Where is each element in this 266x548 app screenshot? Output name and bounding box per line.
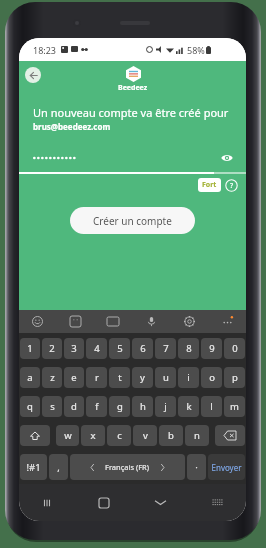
button[interactable]: !#1 <box>20 454 47 480</box>
staticText: f <box>95 400 99 413</box>
button[interactable]: Settings <box>170 310 208 333</box>
button[interactable]: x <box>81 425 105 446</box>
staticText: brus@beedeez.com <box>33 121 111 132</box>
button[interactable]: m <box>224 396 245 417</box>
button[interactable]: Keyboard <box>189 484 246 521</box>
staticText: Fort <box>202 180 217 190</box>
staticText: Créer un compte <box>93 214 172 228</box>
button[interactable]: · <box>187 454 206 480</box>
button[interactable]: Recents <box>19 484 75 521</box>
button[interactable]: Shift <box>20 425 50 446</box>
button[interactable]: 2 <box>42 338 62 359</box>
button[interactable]: Fort <box>202 180 217 190</box>
button[interactable]: e <box>64 367 84 388</box>
button[interactable]: More <box>208 310 246 333</box>
staticText: !#1 <box>26 461 41 474</box>
button[interactable]: n <box>185 425 209 446</box>
staticText: e <box>71 371 77 384</box>
staticText: g <box>117 400 123 413</box>
button[interactable]: Français (FR) <box>70 454 185 480</box>
staticText: 2 <box>49 342 55 355</box>
button[interactable]: a <box>20 367 40 388</box>
staticText: Envoyer <box>211 462 242 473</box>
staticText: ? <box>230 181 234 191</box>
button[interactable]: Créer un compte <box>70 207 195 234</box>
button[interactable]: u <box>155 367 176 388</box>
staticText: b <box>168 429 174 442</box>
staticText: t <box>118 371 122 384</box>
button[interactable]: Envoyer <box>208 454 245 480</box>
staticText: m <box>230 400 239 413</box>
staticText: 3 <box>71 342 77 355</box>
staticText: l <box>210 400 213 413</box>
button[interactable]: Emoji <box>19 310 56 333</box>
staticText: p <box>232 371 238 384</box>
button[interactable]: l <box>201 396 222 417</box>
staticText: 18:23 <box>33 44 57 56</box>
button[interactable]: i <box>178 367 199 388</box>
button[interactable]: 6 <box>132 338 153 359</box>
button[interactable]: 0 <box>224 338 245 359</box>
button[interactable]: GIF <box>94 310 132 333</box>
staticText: 1 <box>27 342 33 355</box>
staticText: h <box>140 400 146 413</box>
staticText: y <box>140 371 145 384</box>
button[interactable]: r <box>86 367 107 388</box>
button[interactable]: f <box>86 396 107 417</box>
button[interactable]: k <box>178 396 199 417</box>
button[interactable]: Stickers <box>56 310 94 333</box>
staticText: 5 <box>117 342 123 355</box>
button[interactable]: h <box>132 396 153 417</box>
staticText: 58% <box>187 44 205 56</box>
button[interactable]: d <box>64 396 84 417</box>
button[interactable]: Voice input <box>132 310 170 333</box>
staticText: o <box>209 371 215 384</box>
staticText: z <box>50 371 55 384</box>
button[interactable]: Back <box>25 67 41 83</box>
staticText: Un nouveau compte va être créé pour <box>33 105 229 120</box>
button[interactable]: 9 <box>201 338 222 359</box>
button[interactable]: Backspace <box>215 425 245 446</box>
button[interactable]: p <box>224 367 245 388</box>
staticText: c <box>117 429 122 442</box>
button[interactable]: q <box>20 396 40 417</box>
button[interactable]: 3 <box>64 338 84 359</box>
staticText: d <box>71 400 77 413</box>
button[interactable]: 7 <box>155 338 176 359</box>
staticText: w <box>64 429 72 442</box>
staticText: a <box>27 371 33 384</box>
button[interactable]: 8 <box>178 338 199 359</box>
button[interactable]: g <box>109 396 130 417</box>
button[interactable]: c <box>107 425 131 446</box>
button[interactable]: Home <box>75 484 132 521</box>
button[interactable]: Show password <box>219 150 235 166</box>
staticText: k <box>186 400 192 413</box>
button[interactable]: 1 <box>20 338 40 359</box>
staticText: Français (FR) <box>105 462 150 472</box>
staticText: Beedeez <box>118 83 148 93</box>
button[interactable]: Back <box>132 484 189 521</box>
button[interactable]: j <box>155 396 176 417</box>
staticText: 7 <box>163 342 169 355</box>
button[interactable]: , <box>49 454 68 480</box>
button[interactable]: o <box>201 367 222 388</box>
button[interactable]: t <box>109 367 130 388</box>
staticText: u <box>163 371 169 384</box>
button[interactable]: y <box>132 367 153 388</box>
staticText: 9 <box>209 342 215 355</box>
button[interactable]: v <box>133 425 157 446</box>
staticText: v <box>143 429 148 442</box>
button[interactable]: z <box>42 367 62 388</box>
button[interactable]: Help <box>225 179 238 192</box>
button[interactable]: 5 <box>109 338 130 359</box>
staticText: 4 <box>94 342 100 355</box>
button[interactable]: 4 <box>86 338 107 359</box>
staticText: s <box>50 400 55 413</box>
staticText: i <box>187 371 190 384</box>
staticText: 8 <box>186 342 192 355</box>
button[interactable]: w <box>56 425 79 446</box>
staticText: r <box>95 371 99 384</box>
button[interactable]: b <box>159 425 183 446</box>
staticText: 6 <box>140 342 146 355</box>
button[interactable]: s <box>42 396 62 417</box>
